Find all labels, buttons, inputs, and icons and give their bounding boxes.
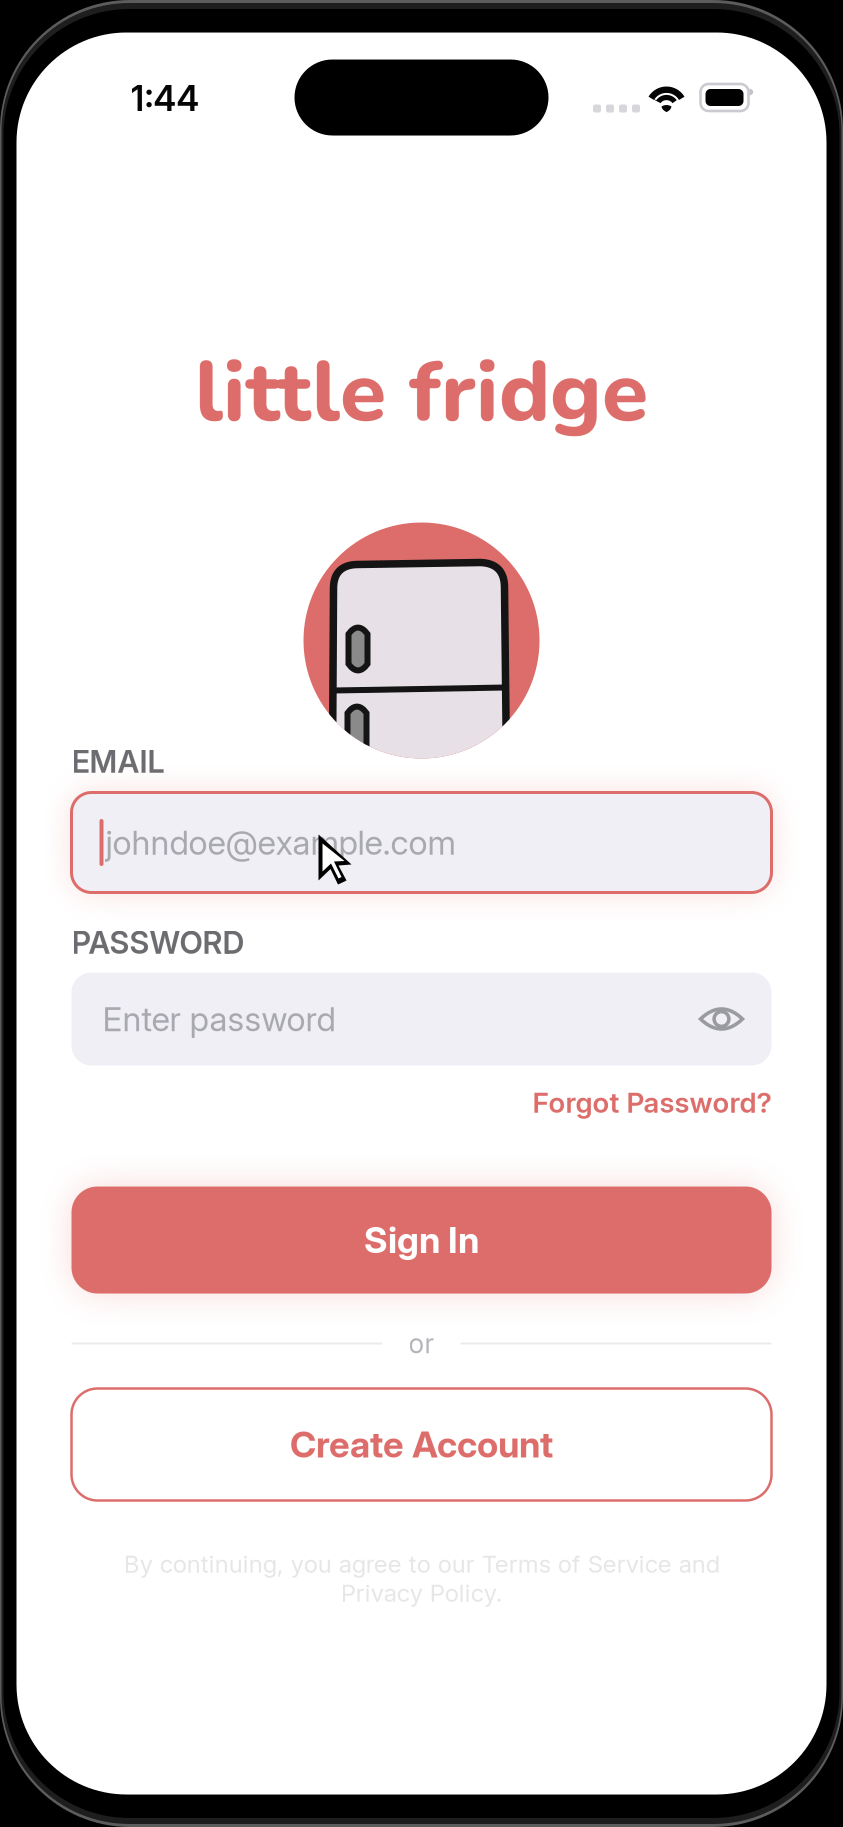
staticText: EMAIL xyxy=(71,743,164,780)
staticText: PASSWORD xyxy=(71,924,244,961)
staticText: little fridge xyxy=(195,335,648,450)
staticText: By continuing, you agree to our Terms of… xyxy=(123,1549,719,1608)
staticText: 1:44 xyxy=(130,77,199,119)
button[interactable]: Create Account xyxy=(71,1388,771,1500)
staticText: or xyxy=(408,1327,434,1360)
staticText: Enter password xyxy=(102,999,335,1039)
staticText: johndoe@example.com xyxy=(105,822,455,863)
staticText: Forgot Password? xyxy=(532,1086,771,1119)
staticText: Sign In xyxy=(364,1218,479,1262)
staticText: Create Account xyxy=(290,1423,553,1466)
button[interactable]: Forgot Password? xyxy=(532,1086,771,1119)
button[interactable]: Sign In xyxy=(71,1186,771,1293)
